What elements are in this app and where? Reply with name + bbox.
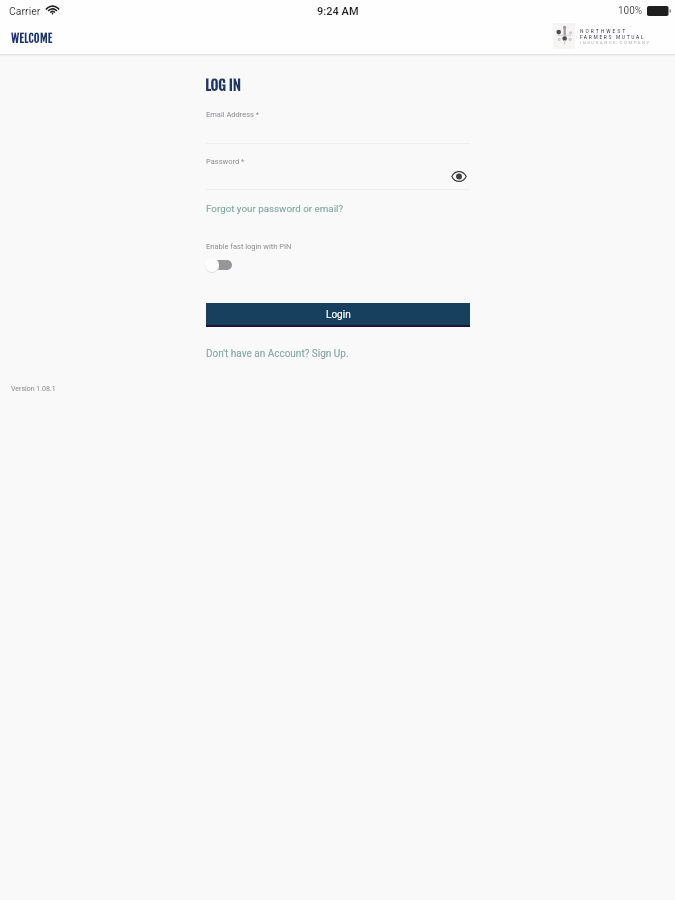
staticText: Forgot your password or email? bbox=[206, 203, 344, 214]
staticText: FARMERS MUTUAL bbox=[580, 34, 646, 40]
staticText: LOG IN bbox=[205, 76, 241, 95]
staticText: Email Address * bbox=[206, 110, 260, 119]
staticText: 9:24 AM bbox=[317, 5, 359, 18]
button[interactable]: Show password bbox=[447, 166, 470, 186]
staticText: Version 1.08.1 bbox=[11, 385, 56, 393]
staticText: Password * bbox=[206, 157, 245, 166]
button[interactable]: Enable fast login with PIN toggle bbox=[205, 258, 233, 272]
staticText: 100% bbox=[618, 5, 643, 17]
button[interactable]: WELCOME bbox=[11, 32, 53, 46]
button[interactable]: Northwest Farmers Mutual Insurance Compa… bbox=[553, 23, 653, 49]
button[interactable]: Forgot your password or email? bbox=[206, 203, 344, 214]
staticText: Login bbox=[326, 309, 351, 321]
button[interactable]: Don't have an Account? Sign Up. bbox=[206, 348, 349, 360]
staticText: Enable fast login with PIN bbox=[206, 242, 292, 251]
staticText: Don't have an Account? Sign Up. bbox=[206, 348, 349, 360]
staticText: NORTHWEST bbox=[580, 28, 628, 34]
button[interactable]: Login bbox=[206, 303, 470, 327]
staticText: INSURANCE COMPANY bbox=[580, 40, 651, 45]
staticText: Carrier bbox=[9, 5, 41, 17]
